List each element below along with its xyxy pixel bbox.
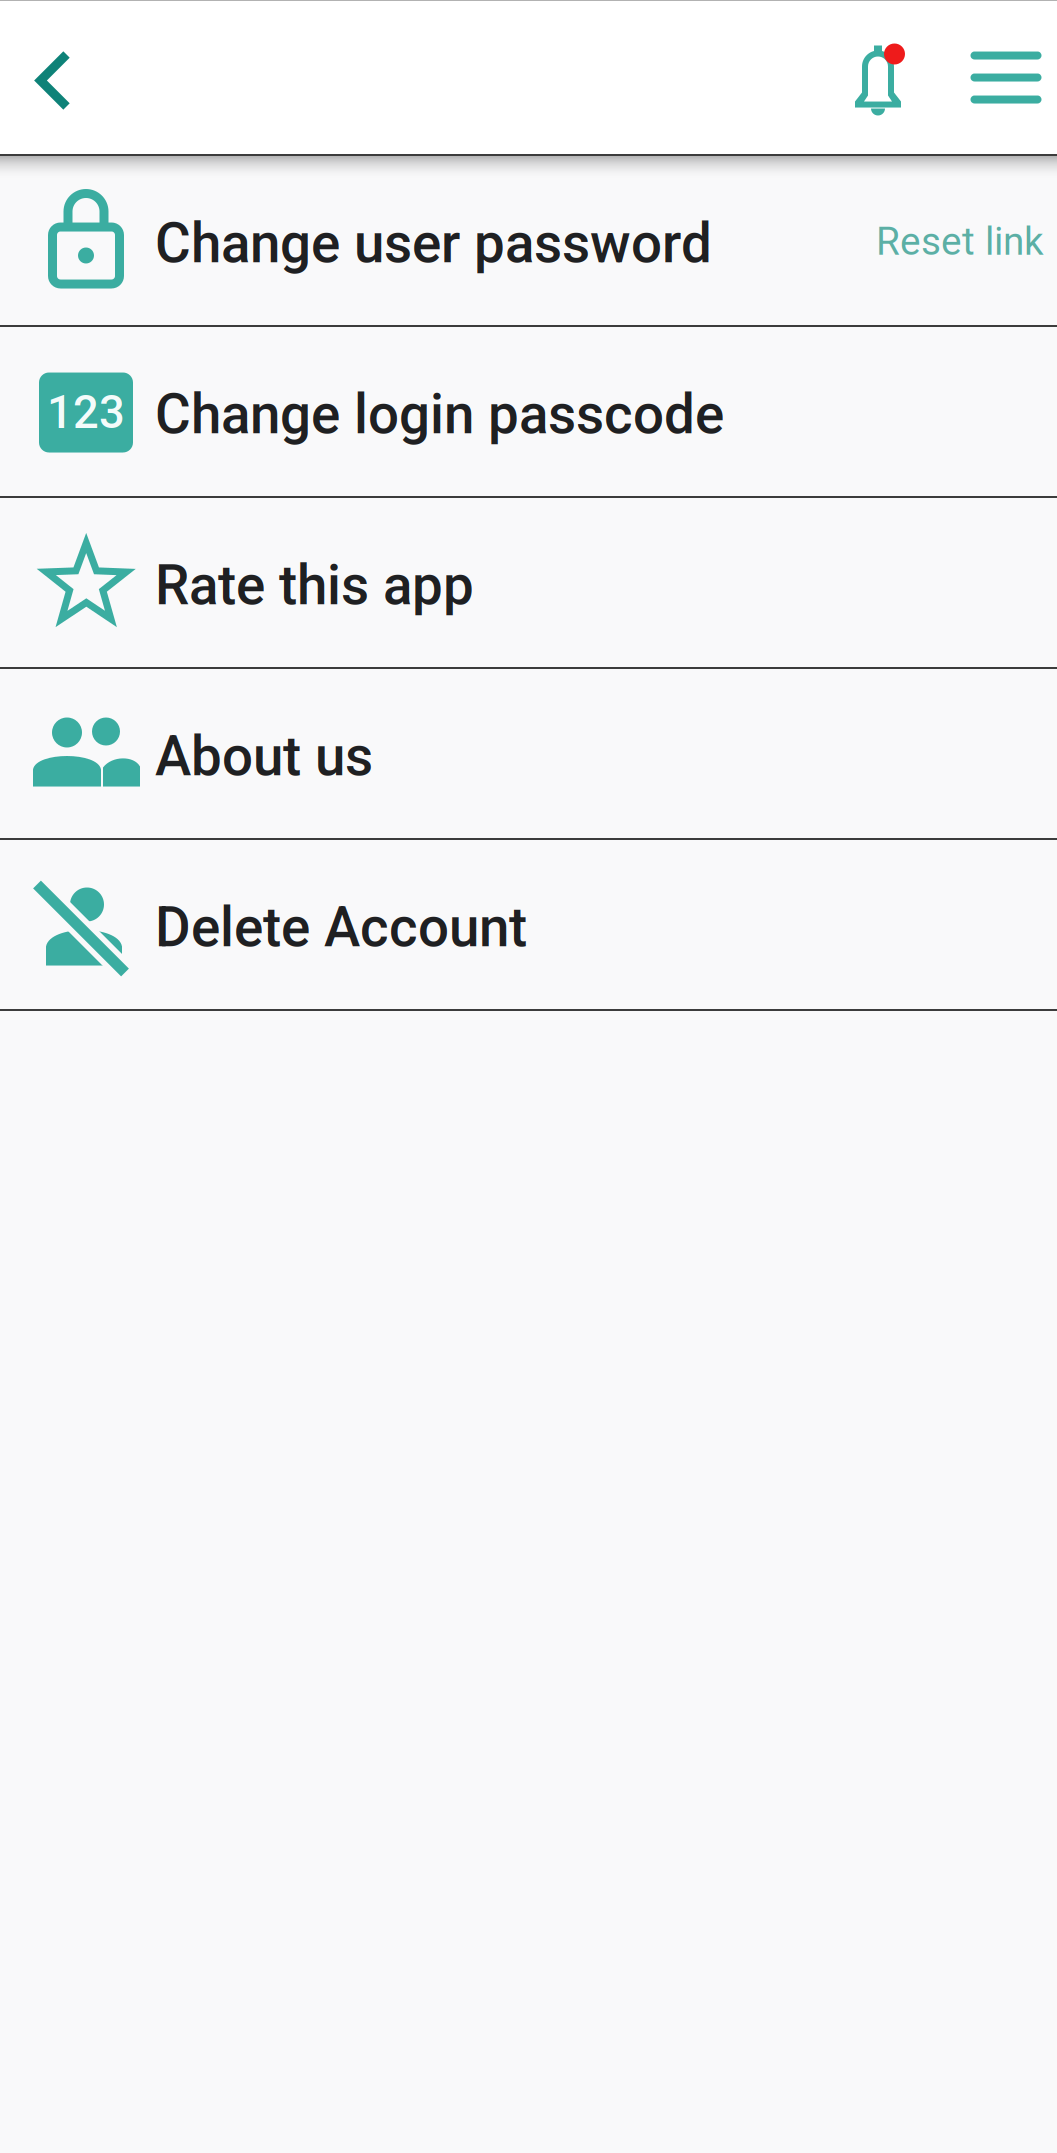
- button[interactable]: Rate this app: [0, 498, 1057, 669]
- button[interactable]: About us: [0, 669, 1057, 840]
- staticText: Reset link: [876, 219, 1044, 264]
- staticText: Rate this app: [155, 553, 474, 618]
- button[interactable]: Change user password: [0, 156, 1057, 327]
- staticText: 123: [47, 386, 125, 439]
- staticText: Change login passcode: [155, 382, 724, 447]
- button[interactable]: 123: [0, 327, 1057, 498]
- button[interactable]: Delete Account: [0, 840, 1057, 1011]
- button[interactable]: Notifications: [803, 1, 955, 154]
- button[interactable]: Menu: [955, 1, 1057, 154]
- staticText: Delete Account: [155, 895, 527, 960]
- staticText: About us: [155, 724, 373, 789]
- button[interactable]: Back: [0, 1, 107, 154]
- staticText: Change user password: [155, 211, 712, 276]
